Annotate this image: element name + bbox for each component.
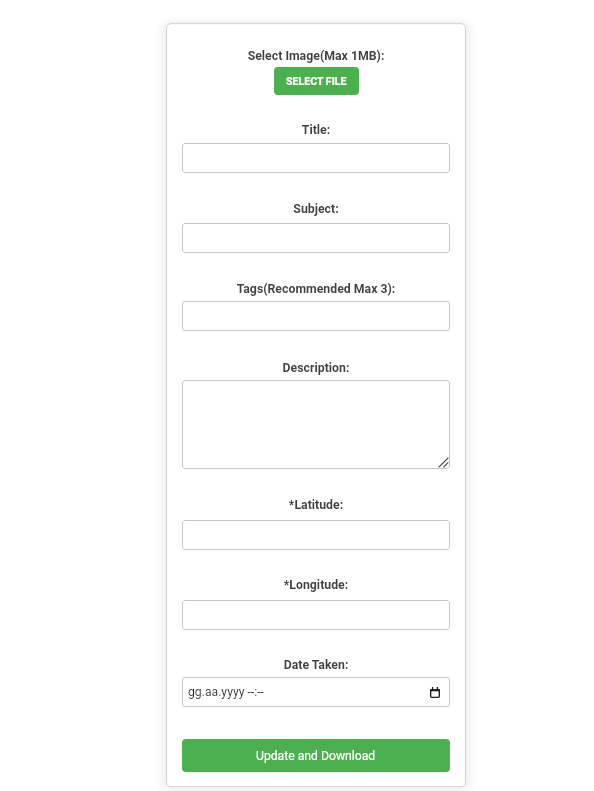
button[interactable]: Title input — [182, 143, 450, 173]
button[interactable]: gg.aa.yyyy --:-- — [182, 677, 450, 707]
staticText: *Longitude: — [182, 578, 450, 592]
button[interactable]: Tags input — [182, 301, 450, 331]
staticText: Tags(Recommended Max 3): — [182, 282, 450, 296]
button[interactable]: Description input — [182, 380, 450, 469]
staticText: Date Taken: — [182, 658, 450, 672]
staticText: Update and Download — [256, 749, 376, 763]
other: Pick a date — [430, 687, 440, 698]
button[interactable]: Longitude input — [182, 600, 450, 630]
staticText: gg.aa.yyyy --:-- — [188, 685, 264, 699]
staticText: Select Image(Max 1MB): — [182, 49, 450, 63]
staticText: Title: — [182, 123, 450, 137]
button[interactable]: Subject input — [182, 223, 450, 253]
button[interactable]: SELECT FILE — [274, 67, 359, 95]
staticText: SELECT FILE — [286, 75, 347, 87]
staticText: Description: — [182, 361, 450, 375]
button[interactable]: Latitude input — [182, 520, 450, 550]
staticText: Subject: — [182, 202, 450, 216]
button[interactable]: Update and Download — [182, 739, 450, 772]
staticText: *Latitude: — [182, 498, 450, 512]
